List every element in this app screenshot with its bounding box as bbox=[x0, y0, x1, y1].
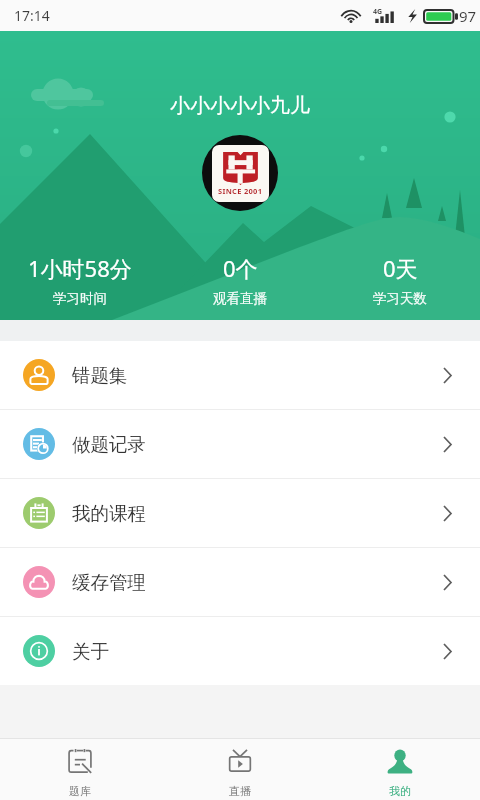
button[interactable]: 错题集 bbox=[0, 341, 480, 409]
staticText: 17:14 bbox=[14, 6, 50, 25]
staticText: 直播 bbox=[229, 784, 251, 798]
staticText: 观看直播 bbox=[213, 290, 267, 307]
staticText: 做题记录 bbox=[72, 433, 146, 456]
button[interactable]: 我的课程 bbox=[0, 479, 480, 547]
button[interactable]: 关于 bbox=[0, 617, 480, 685]
staticText: 缓存管理 bbox=[72, 571, 146, 594]
staticText: 我的 bbox=[389, 784, 411, 798]
button[interactable]: 做题记录 bbox=[0, 410, 480, 478]
staticText: 97 bbox=[459, 6, 477, 26]
staticText: 0个 bbox=[223, 253, 258, 283]
staticText: 学习时间 bbox=[53, 290, 107, 307]
button[interactable]: 缓存管理 bbox=[0, 548, 480, 616]
staticText: 小小小小小九儿 bbox=[170, 93, 310, 118]
staticText: 我的课程 bbox=[72, 502, 146, 525]
button[interactable]: 我的 bbox=[320, 739, 480, 800]
staticText: 0天 bbox=[383, 253, 418, 283]
staticText: 1小时58分 bbox=[28, 253, 132, 283]
button[interactable]: 题库 bbox=[0, 739, 160, 800]
staticText: 4G bbox=[373, 7, 383, 17]
staticText: SINCE 2001 bbox=[218, 186, 263, 196]
button[interactable]: 直播 bbox=[160, 739, 320, 800]
staticText: 学习天数 bbox=[373, 290, 427, 307]
staticText: 错题集 bbox=[72, 364, 128, 387]
staticText: 题库 bbox=[69, 784, 91, 798]
staticText: 关于 bbox=[72, 640, 109, 663]
